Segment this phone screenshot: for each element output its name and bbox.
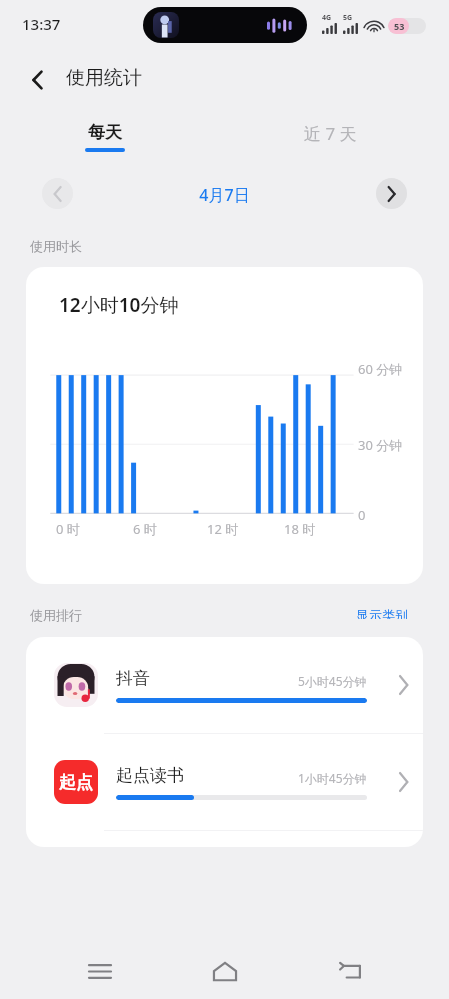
staticText: 18 时 xyxy=(284,520,316,538)
staticText: 1小时45分钟 xyxy=(298,770,367,786)
staticText: 12小时10分钟 xyxy=(59,292,179,318)
button[interactable]: Now playing xyxy=(143,7,307,43)
staticText: 0 时 xyxy=(56,520,80,538)
staticText: 抖音 xyxy=(116,668,150,689)
staticText: 4G xyxy=(322,13,332,23)
button[interactable]: Next day xyxy=(376,178,407,209)
button[interactable]: 抖音 xyxy=(26,637,423,733)
staticText: 13:37 xyxy=(22,14,61,34)
staticText: 5G xyxy=(343,13,353,23)
staticText: 12 时 xyxy=(207,520,239,538)
staticText: 每天 xyxy=(88,122,122,143)
staticText: 30 分钟 xyxy=(358,436,403,454)
staticText: 4月7日 xyxy=(0,184,449,206)
staticText: 显示类别 xyxy=(356,607,408,619)
button[interactable]: Recents xyxy=(74,945,126,997)
button[interactable]: 每天 xyxy=(72,122,138,152)
staticText: 使用统计 xyxy=(66,66,142,90)
button[interactable]: 显示类别 xyxy=(356,607,408,619)
staticText: 使用排行 xyxy=(30,607,82,623)
staticText: 起点读书 xyxy=(116,765,184,786)
button[interactable]: 起点 xyxy=(26,734,423,830)
button[interactable]: Back xyxy=(20,62,56,98)
staticText: 60 分钟 xyxy=(358,360,403,378)
staticText: 53 xyxy=(394,20,405,32)
staticText: 5小时45分钟 xyxy=(298,673,367,689)
button[interactable]: Back xyxy=(324,945,376,997)
staticText: 近 7 天 xyxy=(304,122,357,145)
staticText: 6 时 xyxy=(133,520,157,538)
staticText: 起点 xyxy=(59,772,93,793)
button[interactable]: 近 7 天 xyxy=(290,122,370,145)
staticText: 使用时长 xyxy=(30,238,82,254)
button[interactable]: Home xyxy=(199,945,251,997)
staticText: 0 xyxy=(358,506,366,524)
button[interactable]: Previous day xyxy=(42,178,73,209)
